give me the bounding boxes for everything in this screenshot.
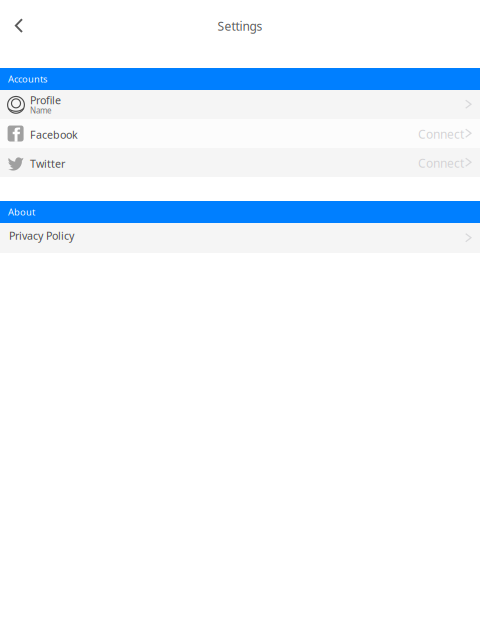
staticText: Connect: [418, 126, 464, 142]
staticText: Accounts: [8, 73, 47, 85]
button[interactable]: Back: [0, 7, 38, 45]
button[interactable]: Profile: [0, 90, 480, 119]
staticText: Twitter: [30, 156, 65, 171]
staticText: Name: [30, 105, 52, 116]
staticText: Connect: [418, 155, 464, 171]
staticText: Privacy Policy: [9, 228, 74, 243]
button[interactable]: Privacy Policy: [0, 223, 480, 253]
staticText: Facebook: [30, 127, 78, 142]
staticText: Profile: [30, 93, 61, 107]
staticText: About: [8, 206, 35, 218]
staticText: Settings: [217, 18, 262, 34]
button[interactable]: Twitter: [0, 148, 480, 177]
button[interactable]: Facebook: [0, 119, 480, 148]
